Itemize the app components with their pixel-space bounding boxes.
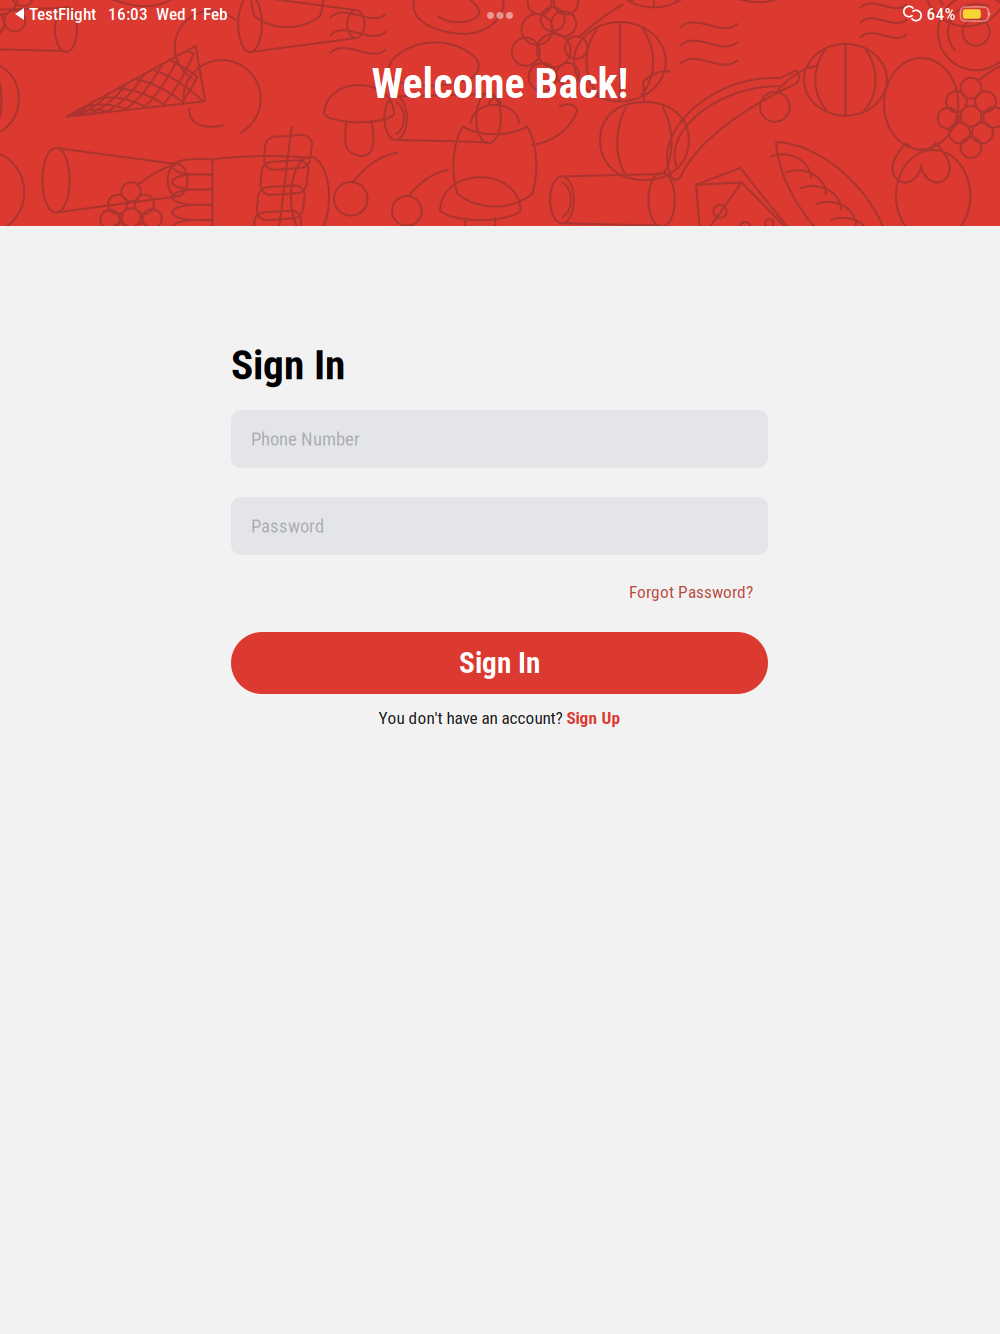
button[interactable]: Forgot Password? <box>629 552 768 602</box>
staticText: 64% <box>922 4 955 24</box>
staticText: You don't have an account? <box>378 708 566 728</box>
staticText: Sign In <box>231 341 345 389</box>
staticText: Sign In <box>459 646 540 680</box>
staticText: Wed 1 Feb <box>148 4 228 24</box>
button[interactable]: Sign Up <box>566 708 620 728</box>
staticText: TestFlight <box>25 4 96 24</box>
staticText: Welcome Back! <box>371 59 628 108</box>
staticText: 16:03 <box>96 4 148 24</box>
staticText: Phone Number <box>251 428 360 450</box>
staticText: Sign Up <box>566 708 620 728</box>
staticText: Password <box>251 515 324 537</box>
staticText: Forgot Password? <box>629 582 753 602</box>
button[interactable]: Sign In <box>231 632 768 694</box>
